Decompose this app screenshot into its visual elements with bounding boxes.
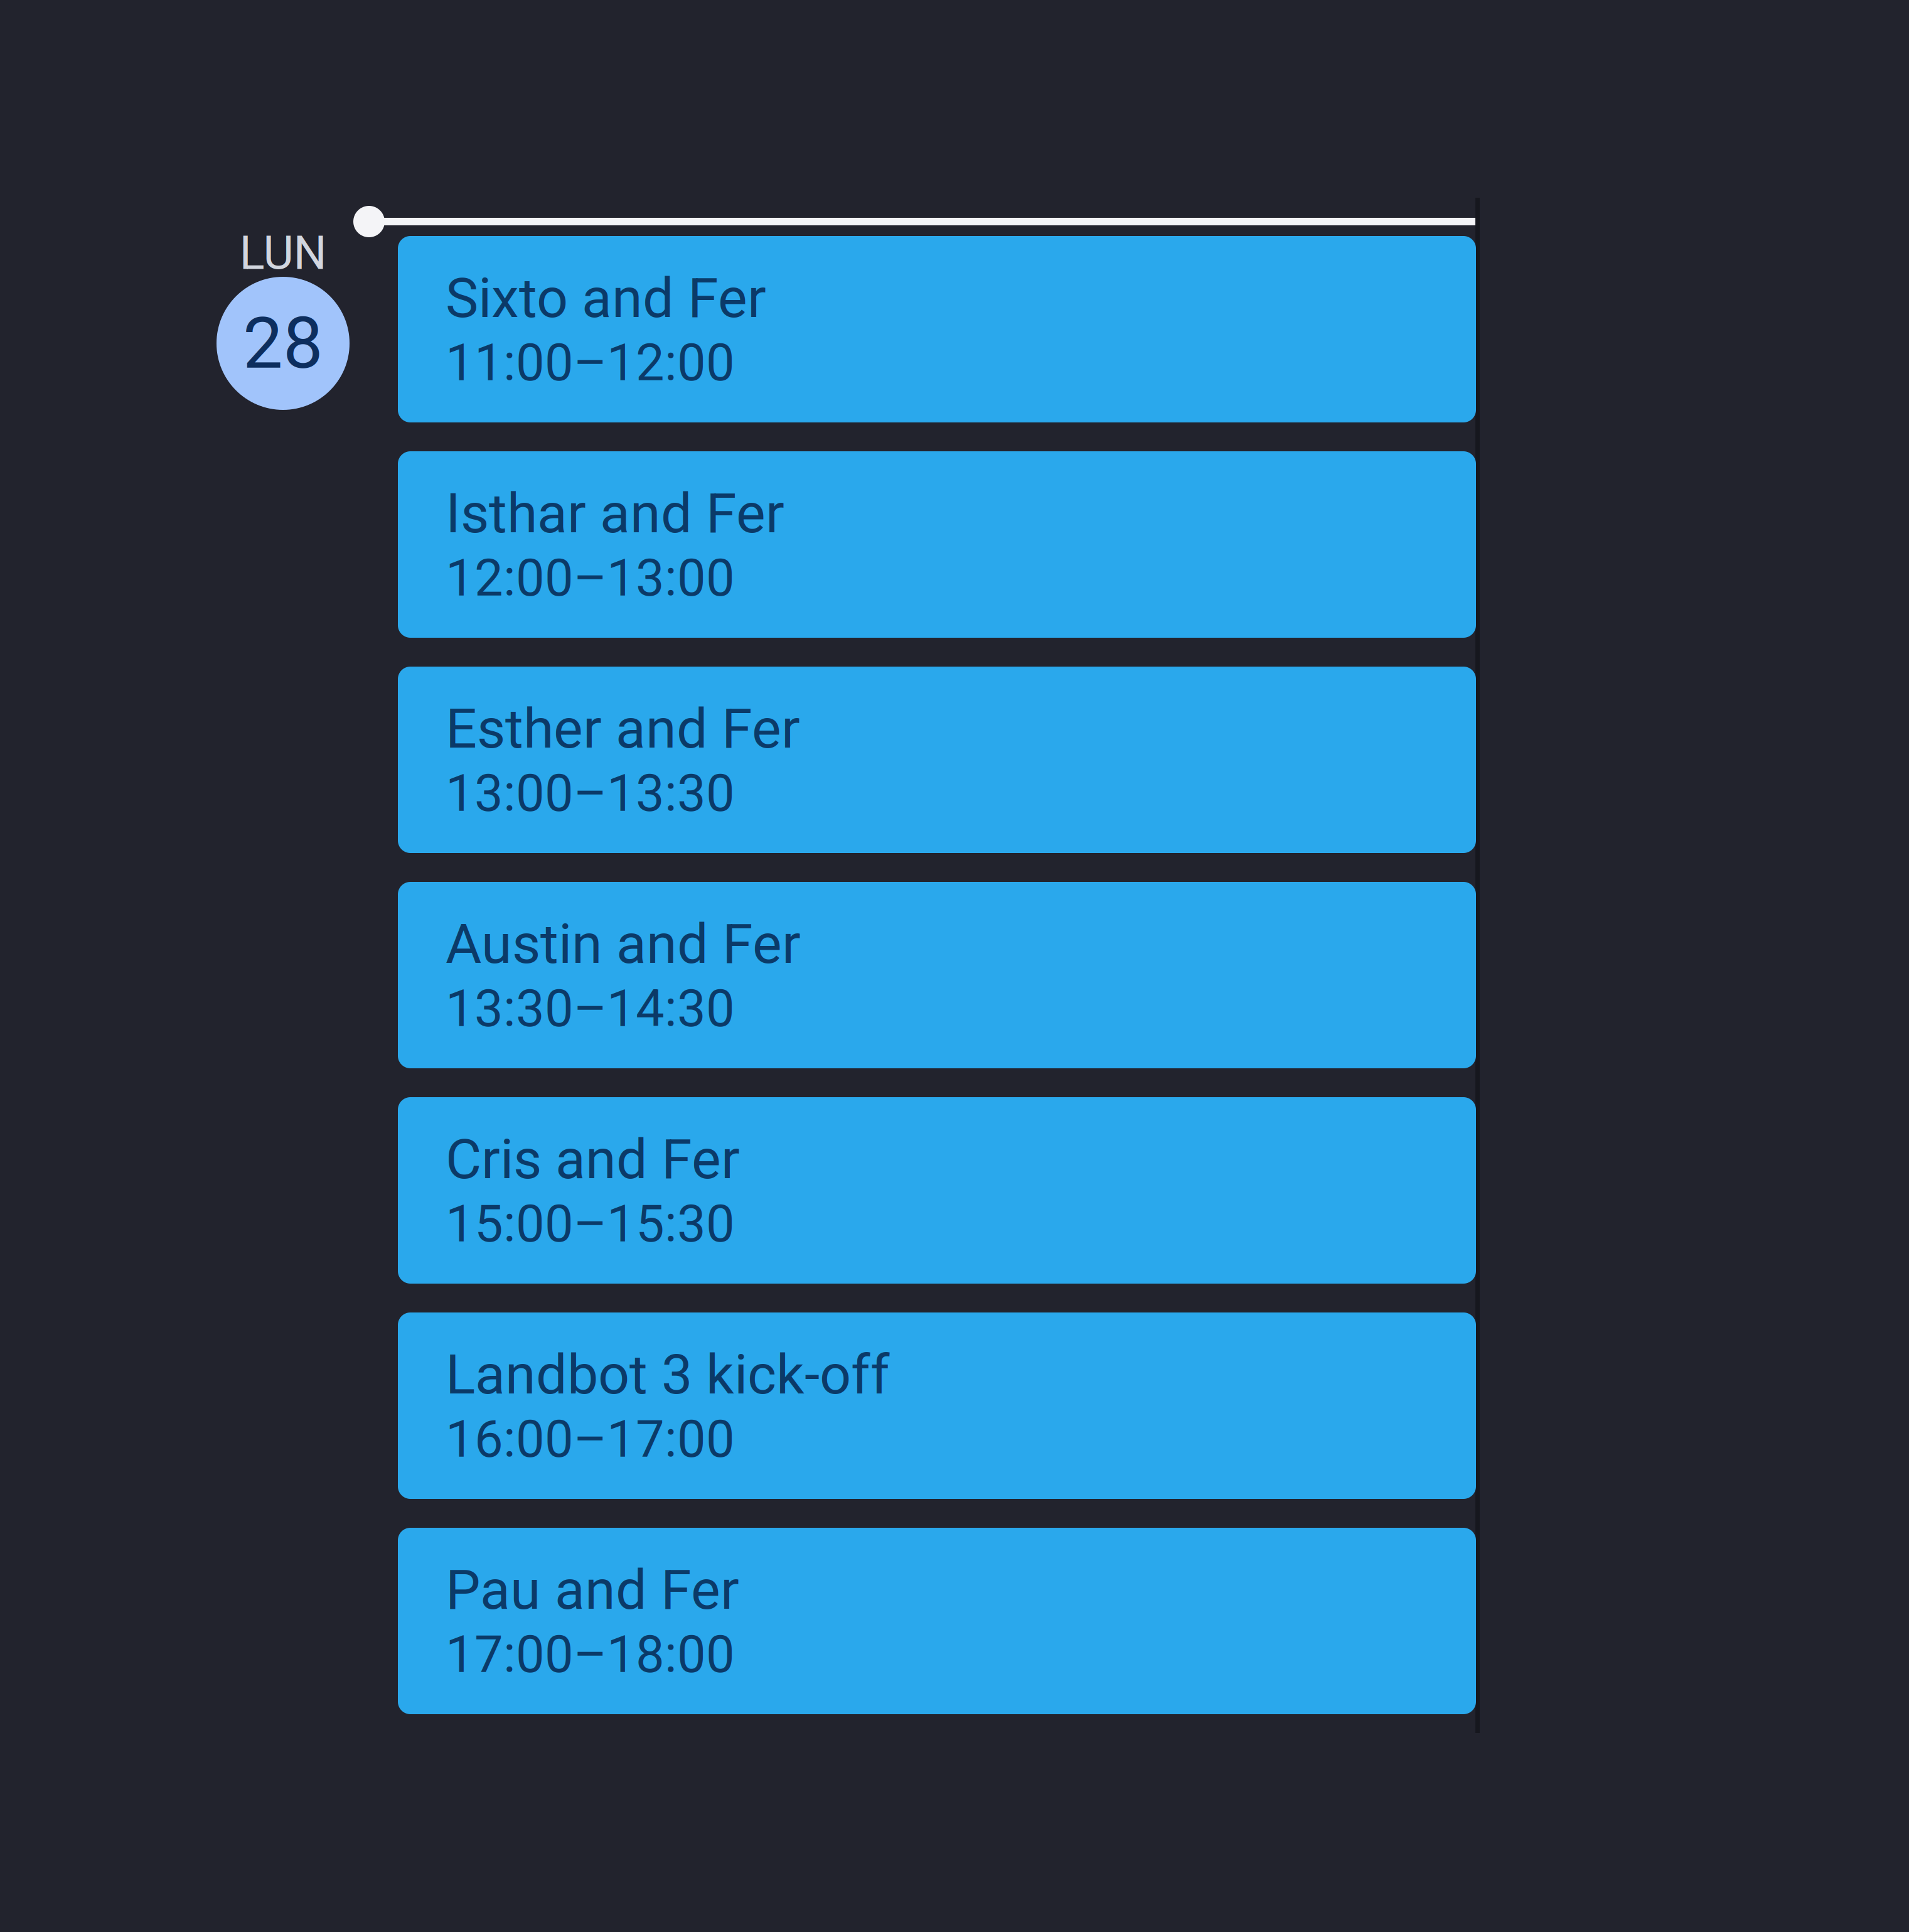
staticText: Sixto and Fer xyxy=(446,266,766,330)
button[interactable]: Sixto and Fer xyxy=(398,236,1476,422)
button[interactable]: Austin and Fer xyxy=(398,882,1476,1068)
button[interactable]: Landbot 3 kick-off xyxy=(398,1312,1476,1499)
staticText: LUN xyxy=(239,225,327,280)
staticText: Isthar and Fer xyxy=(446,481,784,546)
button[interactable]: 28 xyxy=(217,277,350,410)
staticText: 11:00–12:00 xyxy=(446,333,735,393)
staticText: 16:00–17:00 xyxy=(446,1409,735,1469)
button[interactable]: Esther and Fer xyxy=(398,667,1476,853)
button[interactable]: LUN xyxy=(217,235,350,271)
staticText: Pau and Fer xyxy=(446,1557,739,1622)
staticText: Cris and Fer xyxy=(446,1127,740,1192)
button[interactable]: Cris and Fer xyxy=(398,1097,1476,1284)
staticText: 15:00–15:30 xyxy=(446,1194,735,1254)
staticText: Landbot 3 kick-off xyxy=(446,1342,890,1407)
staticText: Esther and Fer xyxy=(446,696,800,761)
staticText: Austin and Fer xyxy=(446,912,801,976)
button[interactable]: Pau and Fer xyxy=(398,1528,1476,1714)
staticText: 12:00–13:00 xyxy=(446,548,735,608)
staticText: 13:00–13:30 xyxy=(446,764,735,823)
staticText: 13:30–14:30 xyxy=(446,979,735,1039)
staticText: 17:00–18:00 xyxy=(446,1625,735,1685)
staticText: 28 xyxy=(243,302,323,385)
button[interactable]: Isthar and Fer xyxy=(398,451,1476,638)
